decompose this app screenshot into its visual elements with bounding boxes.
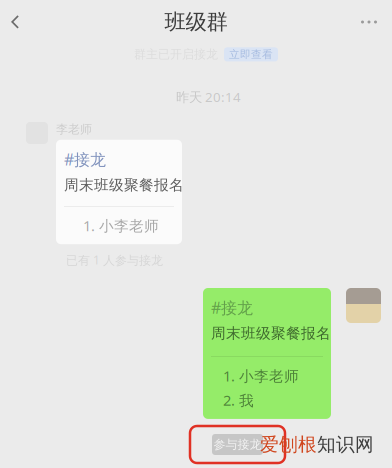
staticText: #接龙 xyxy=(64,149,106,170)
staticText: 群主已开启接龙 xyxy=(134,47,218,62)
button[interactable]: 立即查看 xyxy=(224,47,278,61)
staticText: 知识网 xyxy=(317,433,374,456)
staticText: 李老师 xyxy=(56,122,92,137)
staticText: 立即查看 xyxy=(229,48,273,61)
staticText: 2. 我 xyxy=(223,390,254,410)
staticText: 爱刨根 xyxy=(260,433,317,456)
staticText: 1. 小李老师 xyxy=(223,366,299,385)
staticText: 1. 小李老师 xyxy=(83,216,159,235)
staticText: #接龙 xyxy=(211,297,253,318)
staticText: 已有 1 人参与接龙 xyxy=(66,252,163,268)
staticText: 昨天 20:14 xyxy=(176,88,241,106)
button[interactable]: 参与接龙 xyxy=(190,426,285,463)
button[interactable]: Back xyxy=(0,1,30,43)
button[interactable]: More options xyxy=(346,1,392,43)
staticText: 班级群 xyxy=(164,9,227,35)
staticText: 参与接龙 xyxy=(213,437,261,452)
staticText: 周末班级聚餐报名 xyxy=(211,324,331,342)
staticText: 周末班级聚餐报名 xyxy=(64,176,184,194)
